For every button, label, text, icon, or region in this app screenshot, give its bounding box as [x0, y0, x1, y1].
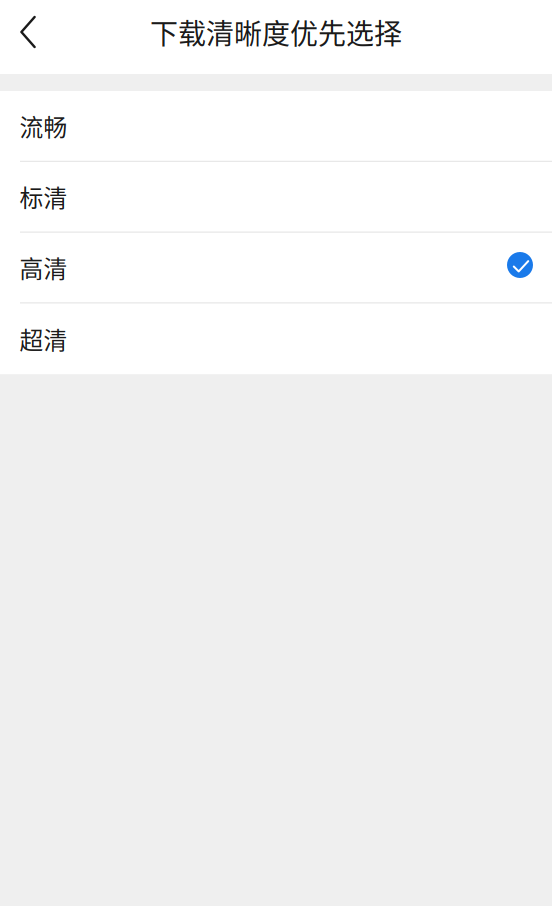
button[interactable]: 超清	[0, 303, 552, 374]
staticText: 高清	[19, 250, 67, 285]
button[interactable]: Back	[0, 0, 56, 64]
button[interactable]: 标清	[0, 162, 552, 233]
staticText: 下载清晰度优先选择	[150, 12, 402, 52]
button[interactable]: 流畅	[0, 91, 552, 162]
staticText: 标清	[19, 179, 67, 214]
button[interactable]: 高清	[0, 233, 552, 303]
staticText: 流畅	[19, 109, 67, 143]
staticText: 超清	[19, 322, 67, 356]
